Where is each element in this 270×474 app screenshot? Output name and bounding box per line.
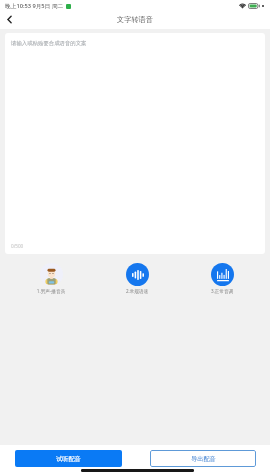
button[interactable]: 返回 (0, 11, 18, 29)
staticText: 请输入或粘贴要合成语音的文案 (11, 40, 87, 47)
button[interactable]: 1.男声-播音员 (26, 263, 76, 294)
staticText: 2.常规语速 (112, 288, 162, 294)
staticText: 晚上10:53 9月5日 周二 (5, 2, 64, 10)
staticText: 文字转语音 (117, 15, 153, 24)
staticText: 0/500 (11, 243, 24, 249)
button[interactable]: 试听配音 (15, 450, 122, 467)
staticText: 3.正常音调 (197, 288, 247, 294)
button[interactable]: 2.常规语速 (112, 263, 162, 294)
button[interactable]: 导出配音 (150, 450, 256, 467)
button[interactable]: 3.正常音调 (197, 263, 247, 294)
staticText: 1.男声-播音员 (26, 288, 76, 294)
button[interactable]: 请输入或粘贴要合成语音的文案 (5, 33, 265, 254)
staticText: 试听配音 (56, 455, 81, 463)
staticText: 导出配音 (191, 455, 216, 463)
